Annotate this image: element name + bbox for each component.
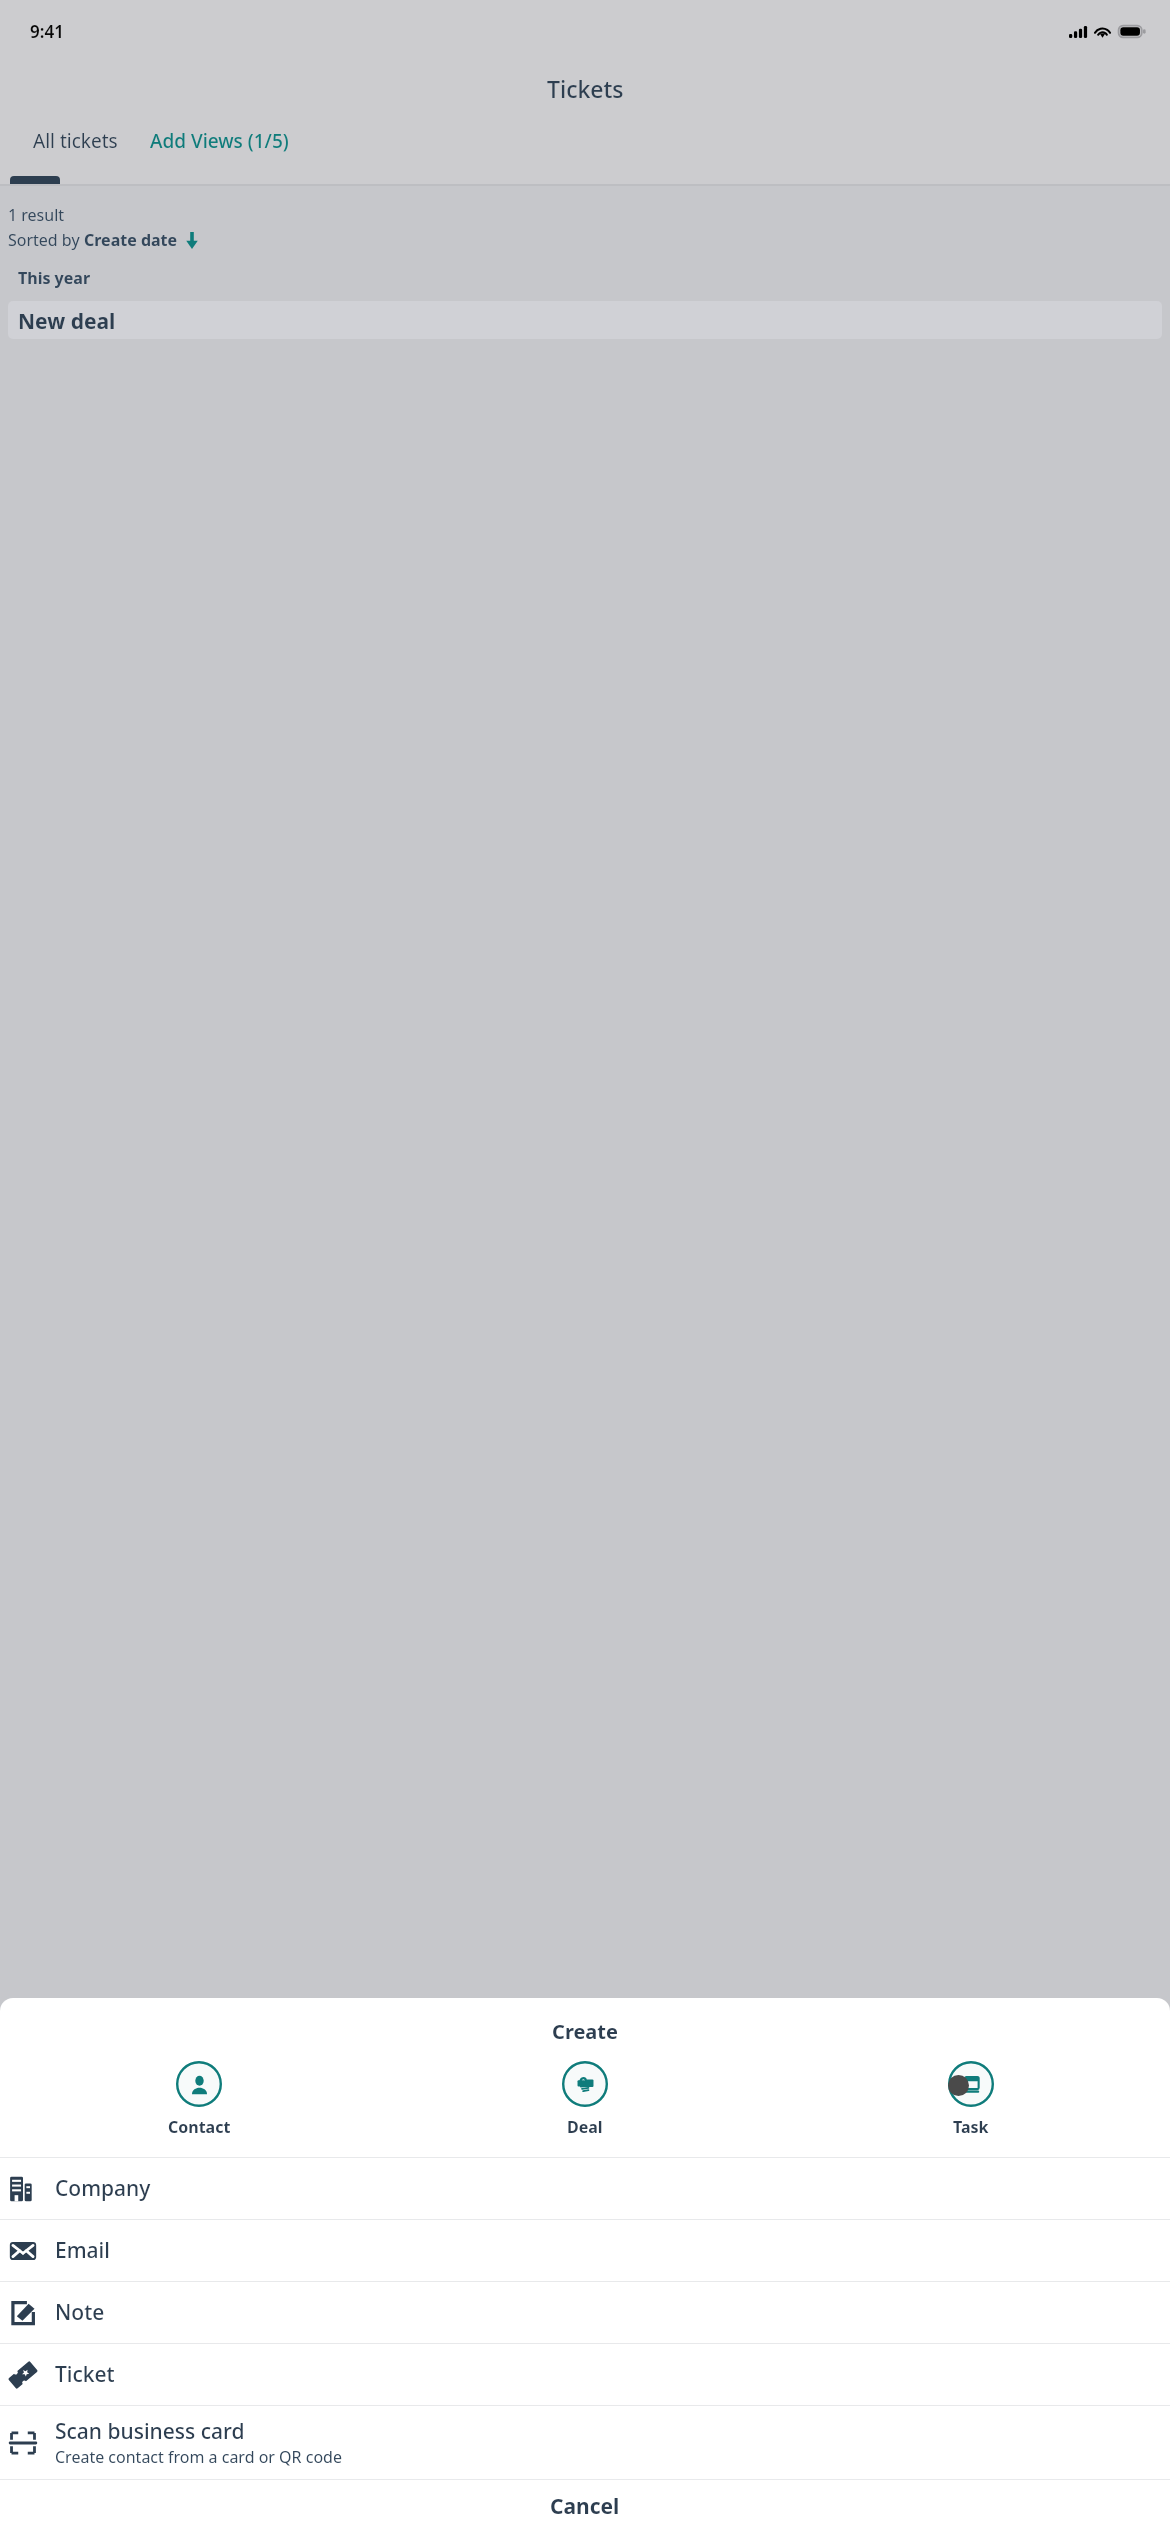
staticText: Create date xyxy=(84,229,178,251)
staticText: Scan business card xyxy=(55,2417,245,2446)
staticText: 9:41 xyxy=(30,20,64,43)
staticText: Ticket xyxy=(55,2360,115,2389)
staticText: Cancel xyxy=(550,2492,620,2521)
other: Note xyxy=(9,2299,37,2327)
staticText: Create contact from a card or QR code xyxy=(55,2446,342,2468)
staticText: Email xyxy=(55,2236,110,2265)
button[interactable]: Add Views (1/5) xyxy=(150,128,289,184)
staticText: Tickets xyxy=(547,73,624,104)
staticText: Company xyxy=(55,2174,151,2203)
other: Company xyxy=(9,2175,37,2203)
button[interactable]: Task xyxy=(778,2061,1164,2138)
button[interactable]: New deal xyxy=(8,301,1162,339)
button[interactable]: Cancel xyxy=(0,2480,1170,2532)
staticText: Sorted by xyxy=(8,229,84,251)
staticText: Add Views (1/5) xyxy=(150,128,289,154)
button[interactable]: Company xyxy=(0,2158,1170,2219)
staticText: All tickets xyxy=(33,128,118,154)
button[interactable]: Note xyxy=(0,2282,1170,2343)
staticText: Note xyxy=(55,2298,105,2327)
staticText: 1 result xyxy=(8,204,65,226)
staticText: This year xyxy=(18,267,91,289)
staticText: New deal xyxy=(18,307,116,336)
staticText: Contact xyxy=(168,2116,231,2138)
staticText: Deal xyxy=(567,2116,603,2138)
staticText: Create xyxy=(552,2018,618,2045)
button[interactable]: Ticket xyxy=(0,2344,1170,2405)
other: Ticket xyxy=(9,2361,37,2389)
other: Scan xyxy=(9,2429,37,2457)
button[interactable]: Contact xyxy=(6,2061,392,2138)
button[interactable]: All tickets xyxy=(0,128,150,184)
button[interactable]: Sorted by xyxy=(8,229,198,251)
button[interactable]: Email xyxy=(0,2220,1170,2281)
other: Email xyxy=(9,2237,37,2265)
button[interactable]: Deal xyxy=(392,2061,778,2138)
button[interactable]: Scan xyxy=(0,2406,1170,2479)
staticText: Task xyxy=(953,2116,989,2138)
